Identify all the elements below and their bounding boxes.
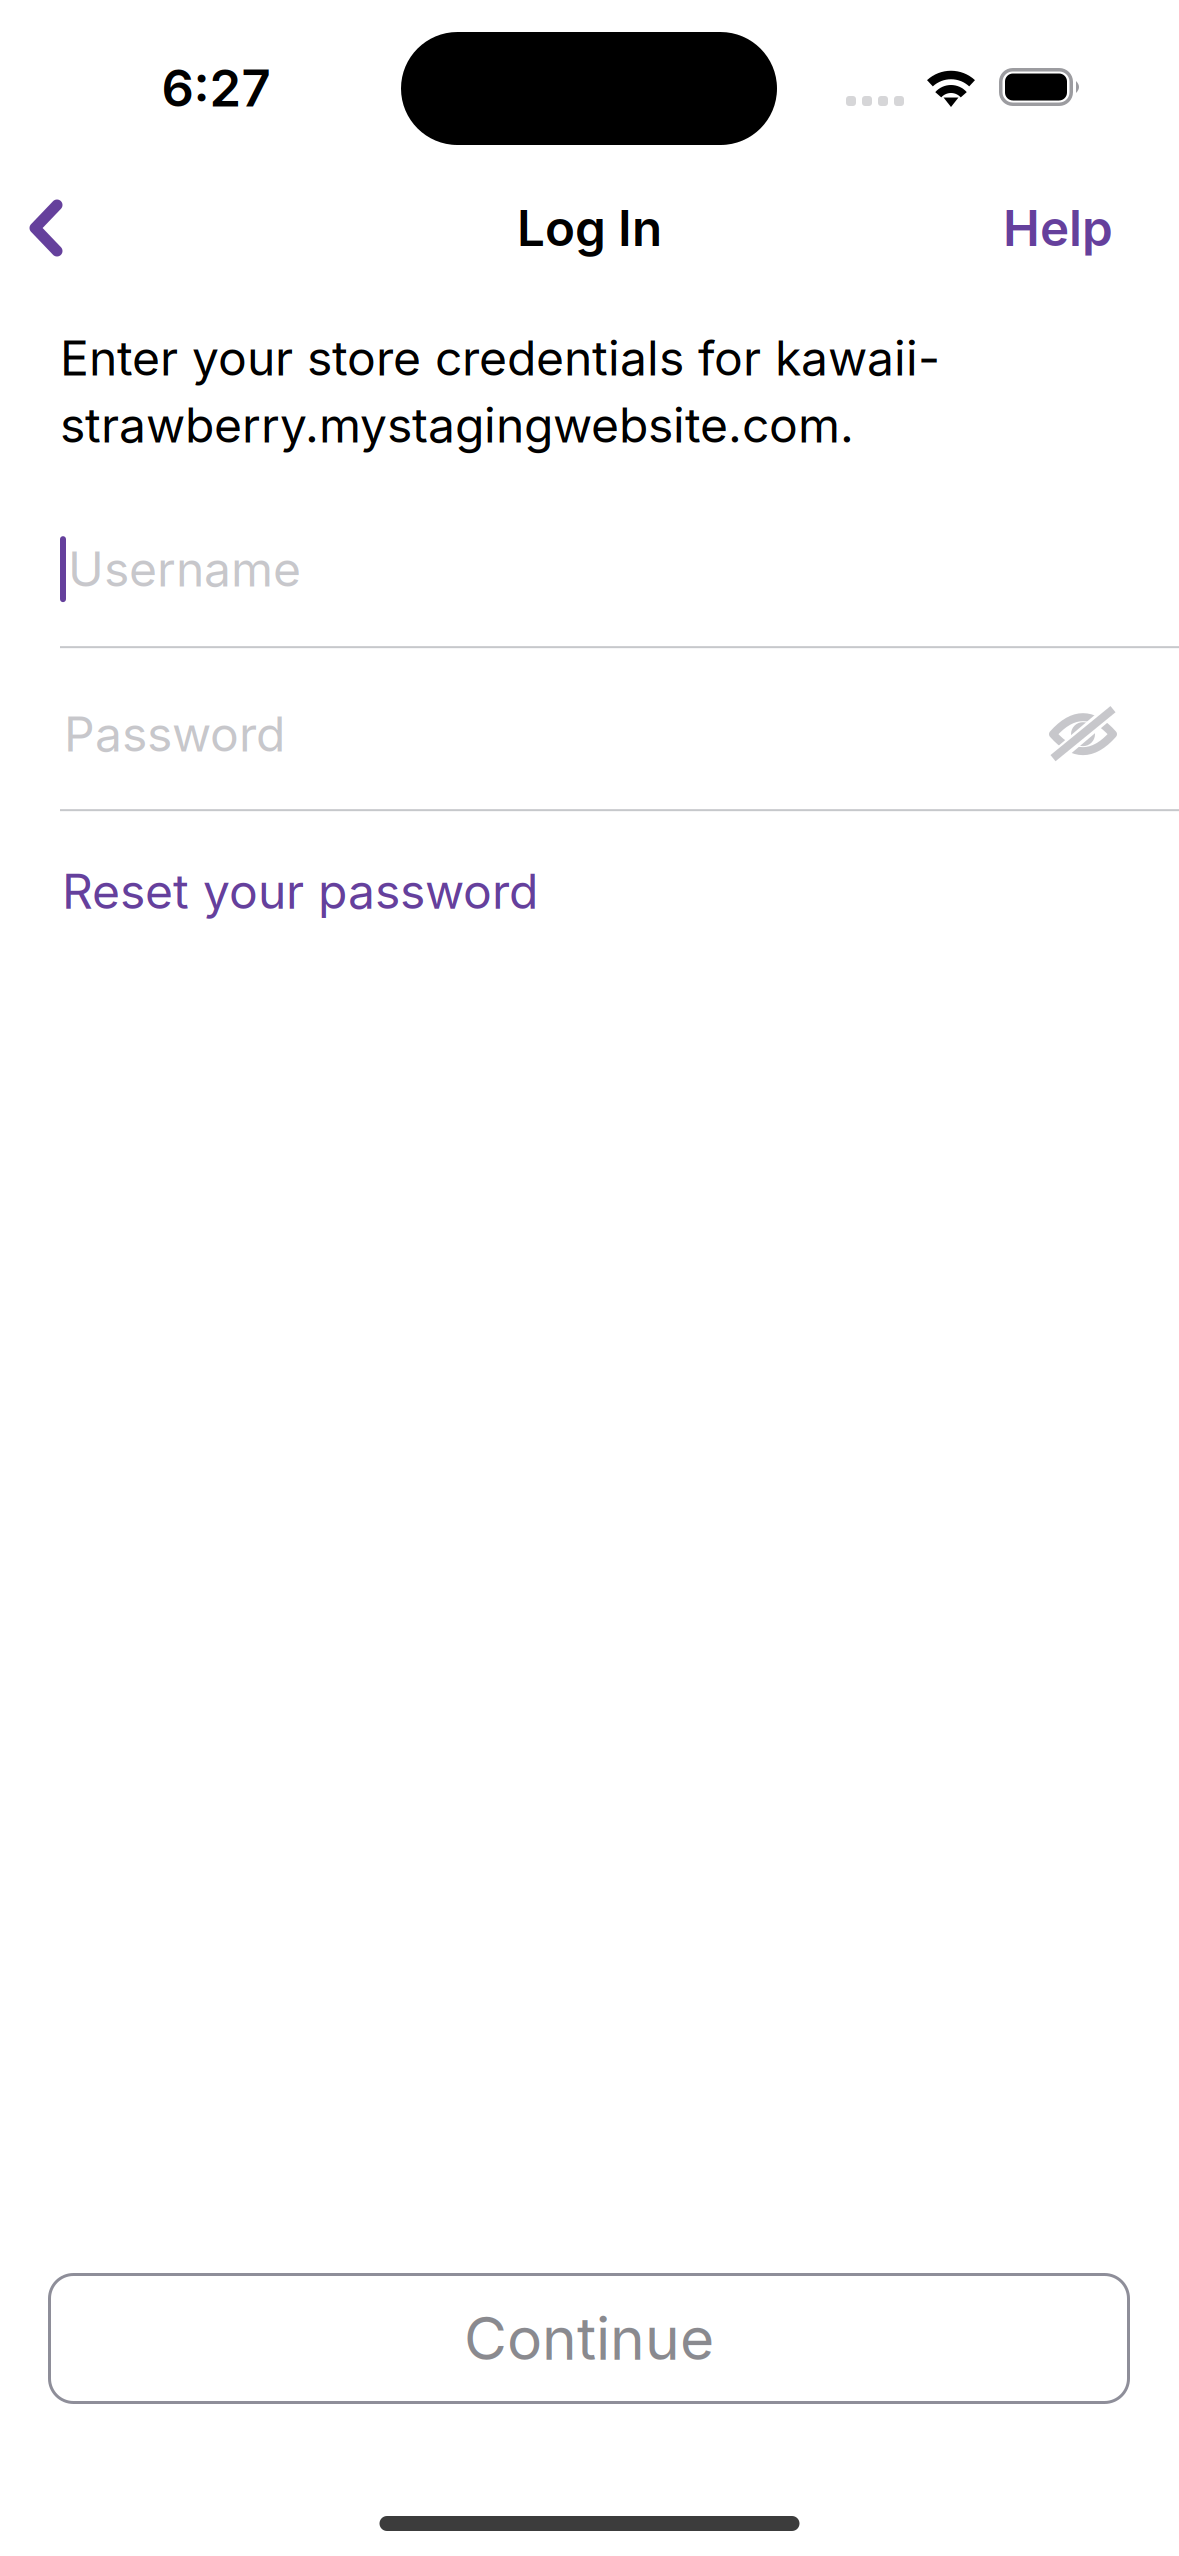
staticText: Log In	[517, 198, 662, 258]
staticText: Help	[1003, 198, 1113, 258]
button[interactable]: Show password	[1029, 689, 1137, 779]
staticText: Username	[68, 540, 301, 598]
button[interactable]: Help	[1003, 170, 1179, 286]
button[interactable]: Continue	[0, 2273, 1179, 2404]
staticText: Password	[64, 705, 285, 763]
button[interactable]: Back	[0, 170, 92, 286]
staticText: 6:27	[161, 57, 270, 119]
staticText: Continue	[464, 2303, 714, 2374]
staticText: Enter your store credentials for kawaii-…	[60, 329, 940, 454]
staticText: Reset your password	[62, 862, 538, 920]
button[interactable]: Reset your password	[0, 811, 538, 944]
